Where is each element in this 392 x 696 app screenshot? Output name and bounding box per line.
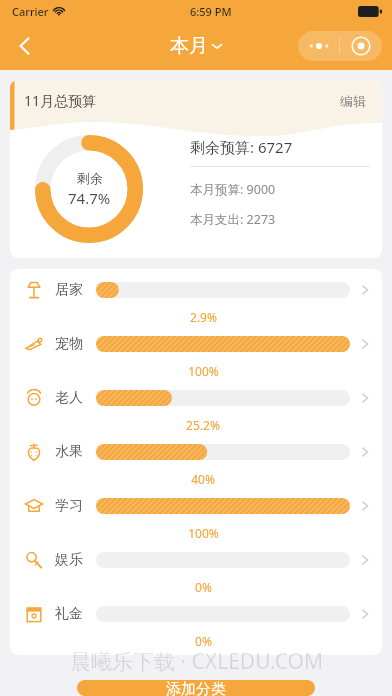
- staticText: Carrier: [12, 4, 49, 19]
- button[interactable]: 本月: [166, 30, 227, 62]
- staticText: 娱乐: [55, 551, 83, 569]
- staticText: 宠物: [55, 335, 83, 353]
- staticText: 编辑: [340, 93, 366, 109]
- staticText: 晨曦乐下载 · CXLEDU.COM: [70, 647, 323, 676]
- staticText: 礼金: [55, 605, 83, 623]
- staticText: 居家: [55, 281, 83, 299]
- staticText: 100%: [188, 363, 219, 379]
- button[interactable]: 老人: [10, 381, 382, 435]
- button[interactable]: Record: [340, 31, 382, 61]
- button[interactable]: 娱乐: [10, 543, 382, 597]
- staticText: 剩余预算: 6727: [190, 137, 293, 157]
- button[interactable]: 居家: [10, 273, 382, 327]
- staticText: 剩余: [77, 170, 103, 186]
- staticText: 0%: [195, 579, 212, 595]
- button[interactable]: 水果: [10, 435, 382, 489]
- staticText: 老人: [55, 389, 83, 407]
- staticText: 74.7%: [68, 188, 111, 208]
- staticText: 本月: [170, 34, 208, 58]
- staticText: 学习: [55, 497, 83, 515]
- staticText: 6:59 PM: [190, 4, 232, 19]
- button[interactable]: 编辑: [336, 89, 370, 113]
- staticText: 2.9%: [190, 309, 217, 325]
- button[interactable]: Back: [4, 25, 46, 67]
- staticText: 11月总预算: [24, 91, 97, 110]
- staticText: 25.2%: [186, 417, 220, 433]
- button[interactable]: 11月总预算: [10, 80, 382, 258]
- button[interactable]: 学习: [10, 489, 382, 543]
- staticText: 水果: [55, 443, 83, 461]
- staticText: 0%: [195, 633, 212, 649]
- button[interactable]: 宠物: [10, 327, 382, 381]
- staticText: 添加分类: [166, 680, 226, 696]
- staticText: 本月预算: 9000: [190, 181, 276, 198]
- staticText: 100%: [188, 525, 219, 541]
- button[interactable]: 添加分类: [77, 680, 315, 696]
- staticText: 40%: [191, 471, 215, 487]
- button[interactable]: More options: [298, 31, 339, 61]
- button[interactable]: 礼金: [10, 597, 382, 651]
- staticText: 本月支出: 2273: [190, 211, 276, 228]
